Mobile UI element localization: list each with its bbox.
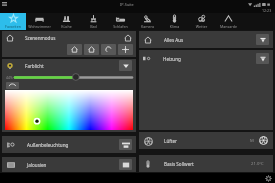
button[interactable]: Kamera — [134, 13, 161, 30]
staticText: 12:23 — [262, 8, 272, 13]
button[interactable]: Farblicht Steuerung — [119, 60, 132, 71]
staticText: Außenbeleuchtung — [27, 142, 119, 148]
button[interactable]: Außenbeleuchtung schalten — [119, 139, 132, 150]
staticText: Klima — [161, 24, 188, 29]
staticText: Mansarde — [215, 24, 242, 29]
button[interactable]: Küche — [53, 13, 80, 30]
staticText: Alles Aus — [164, 37, 256, 43]
staticText: Jalousien — [27, 162, 119, 168]
button[interactable]: Einstellungen — [265, 175, 272, 182]
staticText: 21.0°C — [251, 161, 264, 167]
button[interactable]: Alles Aus — [256, 34, 269, 45]
button[interactable]: Farblicht — [2, 59, 136, 72]
staticText: IP-Suite — [120, 2, 134, 7]
button[interactable]: Wohnzimmer — [26, 13, 53, 30]
button[interactable]: Licht umschalten — [6, 82, 19, 89]
button[interactable]: Wetter — [188, 13, 215, 30]
staticText: Schlafen — [107, 24, 134, 29]
button[interactable]: Nacht — [101, 44, 116, 55]
staticText: 44% — [6, 75, 13, 80]
button[interactable]: Heizung — [139, 50, 273, 67]
button[interactable]: Heizung steuern — [256, 53, 269, 64]
staticText: M — [250, 138, 254, 144]
button[interactable]: Jalousien — [2, 157, 136, 172]
staticText: Favoriten — [0, 24, 26, 29]
button[interactable]: Außenbeleuchtung — [2, 136, 136, 153]
staticText: Lüfter — [164, 138, 250, 144]
staticText: Küche — [53, 24, 80, 29]
button[interactable]: Anwesend — [67, 44, 82, 55]
staticText: Bad — [80, 24, 107, 29]
button[interactable]: Alles Aus — [139, 31, 273, 48]
button[interactable]: Abwesend — [84, 44, 99, 55]
staticText: Wohnzimmer — [26, 24, 53, 29]
staticText: Wetter — [188, 24, 215, 29]
button[interactable]: Favoriten — [0, 13, 26, 30]
button[interactable]: Urlaub — [118, 44, 133, 55]
staticText: Szenenmodus — [25, 35, 124, 41]
button[interactable]: Farbauswahl — [5, 90, 133, 130]
button[interactable]: Bad — [80, 13, 107, 30]
button[interactable]: Klima — [161, 13, 188, 30]
staticText: Heizung — [163, 56, 256, 62]
staticText: Farblicht — [25, 63, 119, 69]
staticText: Kamera — [134, 24, 161, 29]
button[interactable]: Lüfter schalten — [258, 135, 269, 146]
button[interactable]: Lüfter — [139, 132, 273, 149]
button[interactable]: Schlafen — [107, 13, 134, 30]
staticText: Basis Sollwert — [164, 161, 251, 167]
button[interactable]: Mansarde — [215, 13, 242, 30]
button[interactable]: Basis Sollwert — [139, 155, 273, 172]
button[interactable]: Szenenmodus — [2, 31, 136, 44]
button[interactable]: Jalousien steuern — [119, 159, 132, 170]
